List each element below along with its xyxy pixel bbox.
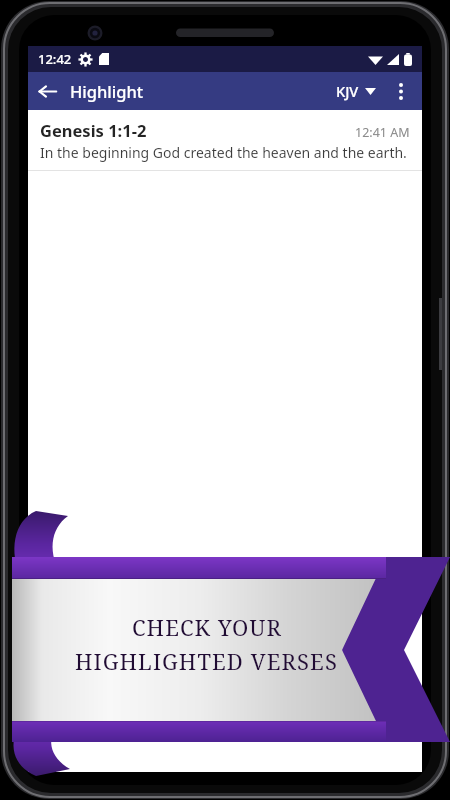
button[interactable]: Back <box>28 72 66 110</box>
button[interactable]: More options <box>386 72 416 110</box>
staticText: 12:42 <box>38 50 72 68</box>
staticText: CHECK YOUR <box>132 612 282 642</box>
staticText: In the beginning God created the heaven … <box>40 143 407 162</box>
staticText: Genesis 1:1-2 <box>40 119 147 141</box>
button[interactable]: KJV <box>328 74 384 108</box>
staticText: HIGHLIGHTED VERSES <box>75 646 338 676</box>
staticText: Highlight <box>70 80 144 102</box>
button[interactable]: Genesis 1:1-2 <box>28 110 422 170</box>
staticText: 12:41 AM <box>355 124 410 141</box>
staticText: KJV <box>336 81 359 101</box>
button[interactable]: Check your highlighted verses <box>0 0 450 800</box>
